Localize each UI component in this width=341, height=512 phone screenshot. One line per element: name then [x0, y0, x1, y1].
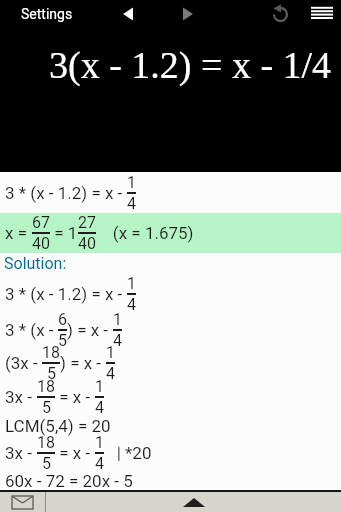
staticText: 1: [95, 433, 104, 452]
staticText: 1: [127, 274, 136, 293]
staticText: | *20: [104, 443, 152, 463]
staticText: 18: [37, 377, 55, 396]
button[interactable]: [46, 492, 341, 512]
staticText: LCM(5,4) = 20: [5, 416, 111, 436]
button[interactable]: Settings: [0, 2, 79, 26]
staticText: 5: [42, 454, 51, 473]
staticText: ) = x -: [67, 320, 113, 340]
staticText: 40: [78, 234, 96, 253]
staticText: 4: [95, 398, 104, 417]
staticText: 3 * (x - 1.2) = x -: [5, 183, 127, 203]
button[interactable]: [174, 0, 202, 28]
button[interactable]: [114, 0, 142, 28]
staticText: 18: [37, 433, 55, 452]
staticText: 4: [127, 295, 136, 314]
staticText: 27: [78, 213, 96, 232]
staticText: Solution:: [4, 254, 67, 273]
staticText: 3(x - 1.2) = x - 1/4: [49, 44, 332, 86]
staticText: 60x - 72 = 20x - 5: [5, 471, 133, 491]
staticText: 3x -: [5, 387, 37, 407]
staticText: 4: [127, 194, 136, 213]
staticText: 5: [42, 398, 51, 417]
staticText: 6: [58, 310, 67, 329]
staticText: 5: [58, 331, 67, 350]
staticText: 67: [32, 213, 50, 232]
staticText: = x -: [55, 443, 95, 463]
staticText: (3x -: [5, 353, 42, 373]
staticText: 3x -: [5, 443, 37, 463]
staticText: 1: [95, 377, 104, 396]
staticText: 1: [127, 173, 136, 192]
staticText: 4: [113, 331, 122, 350]
button[interactable]: [0, 492, 45, 512]
staticText: (x = 1.675): [96, 223, 194, 243]
staticText: 3 * (x -: [5, 320, 58, 340]
staticText: = x -: [55, 387, 95, 407]
staticText: = 1: [50, 223, 78, 243]
staticText: 4: [106, 364, 115, 383]
staticText: Settings: [21, 6, 73, 22]
staticText: 40: [32, 234, 50, 253]
staticText: 18: [42, 343, 60, 362]
button[interactable]: x =: [0, 213, 341, 253]
button[interactable]: [264, 0, 296, 28]
staticText: 5: [47, 364, 56, 383]
staticText: 1: [106, 343, 115, 362]
staticText: 3 * (x - 1.2) = x -: [5, 284, 127, 304]
staticText: ) = x -: [60, 353, 106, 373]
staticText: 1: [113, 310, 122, 329]
staticText: 4: [95, 454, 104, 473]
staticText: x =: [5, 223, 32, 243]
button[interactable]: [303, 0, 341, 28]
